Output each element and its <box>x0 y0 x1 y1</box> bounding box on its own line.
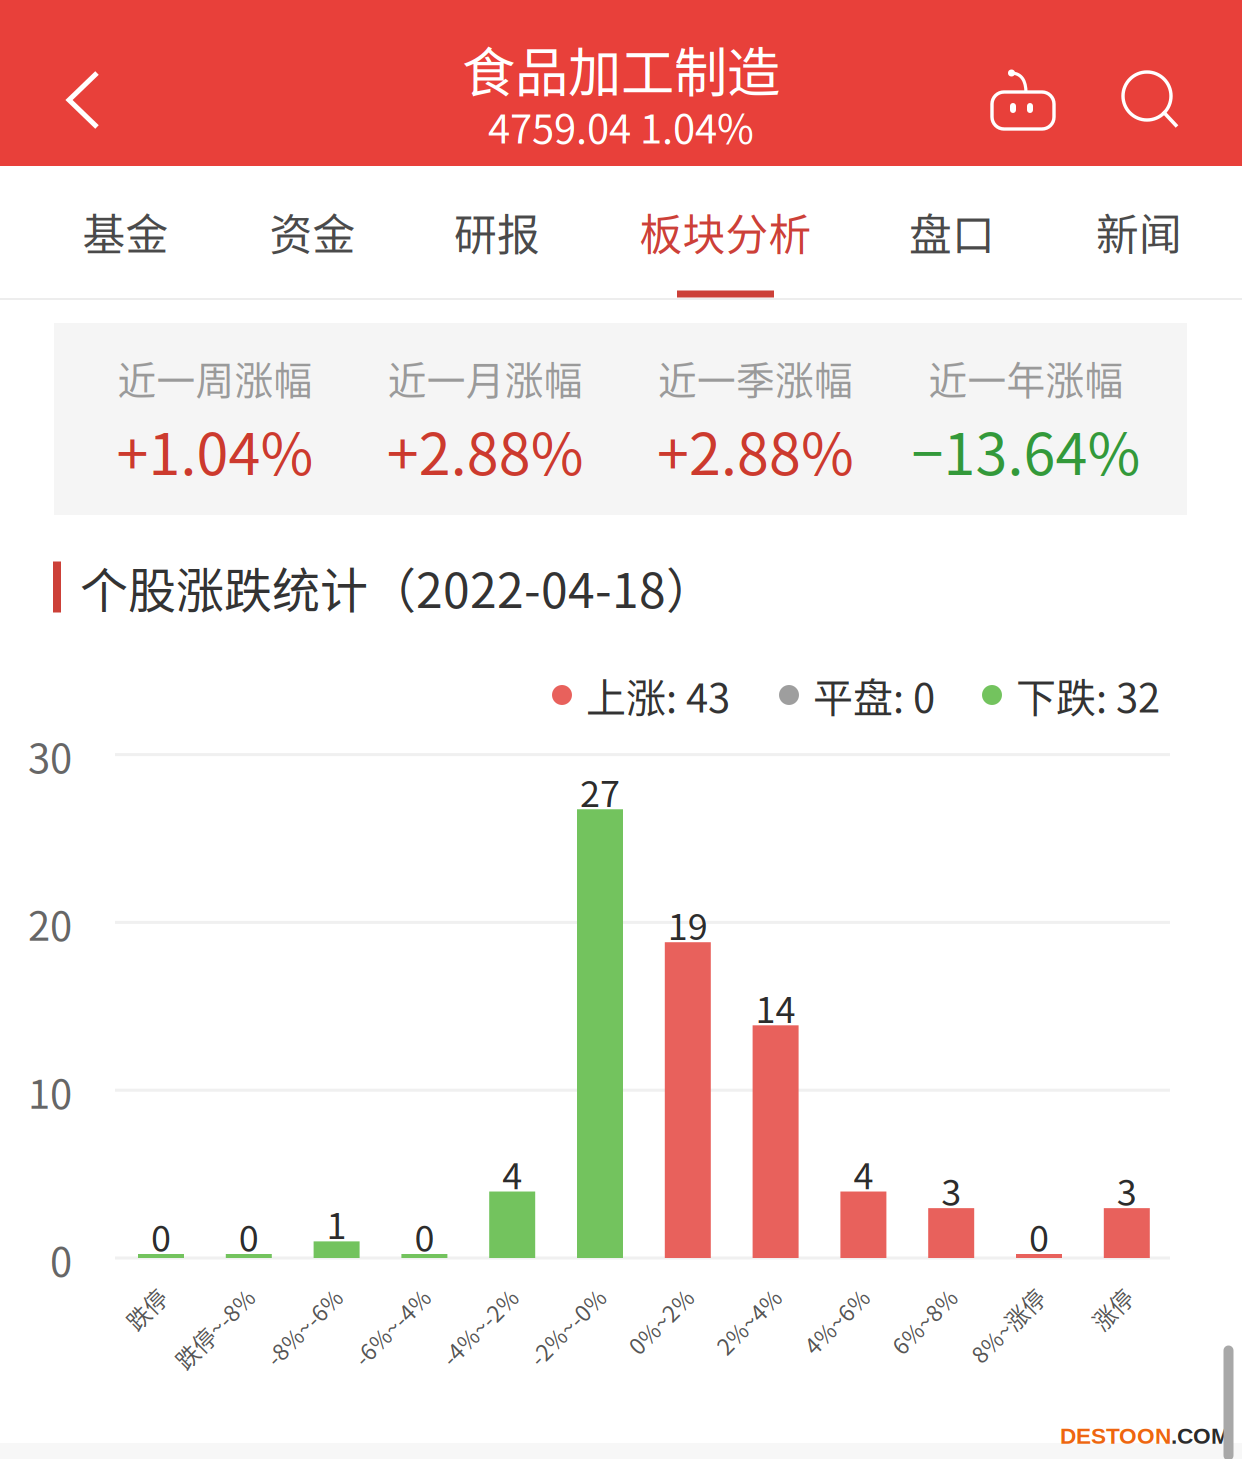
staticText: 27 <box>580 765 620 817</box>
staticText: DESTOON <box>1060 1423 1171 1449</box>
staticText: -4%~-2% <box>406 1281 503 1313</box>
staticText: -8%~-6% <box>231 1281 328 1313</box>
staticText: 4 <box>502 1147 522 1200</box>
staticText: 4 <box>853 1147 873 1200</box>
staticText: 平盘: 0 <box>813 666 935 724</box>
staticText: 3 <box>1117 1164 1137 1216</box>
staticText: 4759.04 1.04% <box>488 97 754 155</box>
button[interactable]: 板块分析 <box>620 166 830 298</box>
staticText: +1.04% <box>116 408 313 491</box>
button[interactable]: 盘口 <box>867 166 1037 298</box>
staticText: 14 <box>756 981 796 1033</box>
staticText: -6%~-4% <box>318 1281 415 1313</box>
staticText: −13.64% <box>911 408 1140 491</box>
button[interactable]: 新闻 <box>1054 166 1224 298</box>
staticText: 近一周涨幅 <box>117 350 312 406</box>
staticText: 10 <box>28 1062 72 1120</box>
button[interactable]: Search <box>1091 27 1211 173</box>
button[interactable]: Assistant <box>963 26 1083 172</box>
staticText: 新闻 <box>1096 201 1182 263</box>
staticText: 近一季涨幅 <box>658 350 853 406</box>
staticText: 0 <box>151 1210 171 1262</box>
button[interactable]: 资金 <box>227 166 397 298</box>
staticText: 30 <box>28 727 72 784</box>
staticText: 食品加工制造 <box>462 30 780 108</box>
staticText: 0 <box>414 1210 434 1262</box>
staticText: 资金 <box>269 201 355 263</box>
staticText: 8%~涨停 <box>937 1281 1030 1313</box>
staticText: 跌停~-8% <box>139 1281 240 1313</box>
staticText: 上涨: 43 <box>586 666 730 724</box>
staticText: 近一月涨幅 <box>388 350 583 406</box>
staticText: .COM <box>1171 1423 1230 1449</box>
staticText: 0 <box>1029 1210 1049 1262</box>
staticText: 0%~2% <box>598 1281 679 1313</box>
staticText: 0 <box>239 1210 259 1262</box>
staticText: 4%~6% <box>773 1281 854 1313</box>
staticText: 个股涨跌统计（2022-04-18） <box>80 552 714 622</box>
button[interactable]: Back <box>18 17 148 183</box>
staticText: 19 <box>668 898 708 950</box>
staticText: 研报 <box>454 201 540 263</box>
staticText: 涨停 <box>1072 1281 1118 1313</box>
button[interactable]: 基金 <box>40 166 210 298</box>
staticText: 盘口 <box>909 201 995 263</box>
staticText: 20 <box>28 894 72 952</box>
staticText: 跌停 <box>106 1281 152 1313</box>
staticText: -2%~-0% <box>494 1281 591 1313</box>
staticText: 板块分析 <box>639 201 811 263</box>
staticText: 1 <box>327 1197 347 1249</box>
staticText: 基金 <box>82 201 168 263</box>
button[interactable]: 研报 <box>412 166 582 298</box>
staticText: 0 <box>50 1230 72 1288</box>
staticText: +2.88% <box>387 408 584 491</box>
staticText: 6%~8% <box>861 1281 942 1313</box>
staticText: 近一年涨幅 <box>928 350 1123 406</box>
staticText: 3 <box>941 1164 961 1216</box>
staticText: 2%~4% <box>686 1281 767 1313</box>
staticText: 下跌: 32 <box>1016 666 1160 724</box>
staticText: +2.88% <box>657 408 854 491</box>
